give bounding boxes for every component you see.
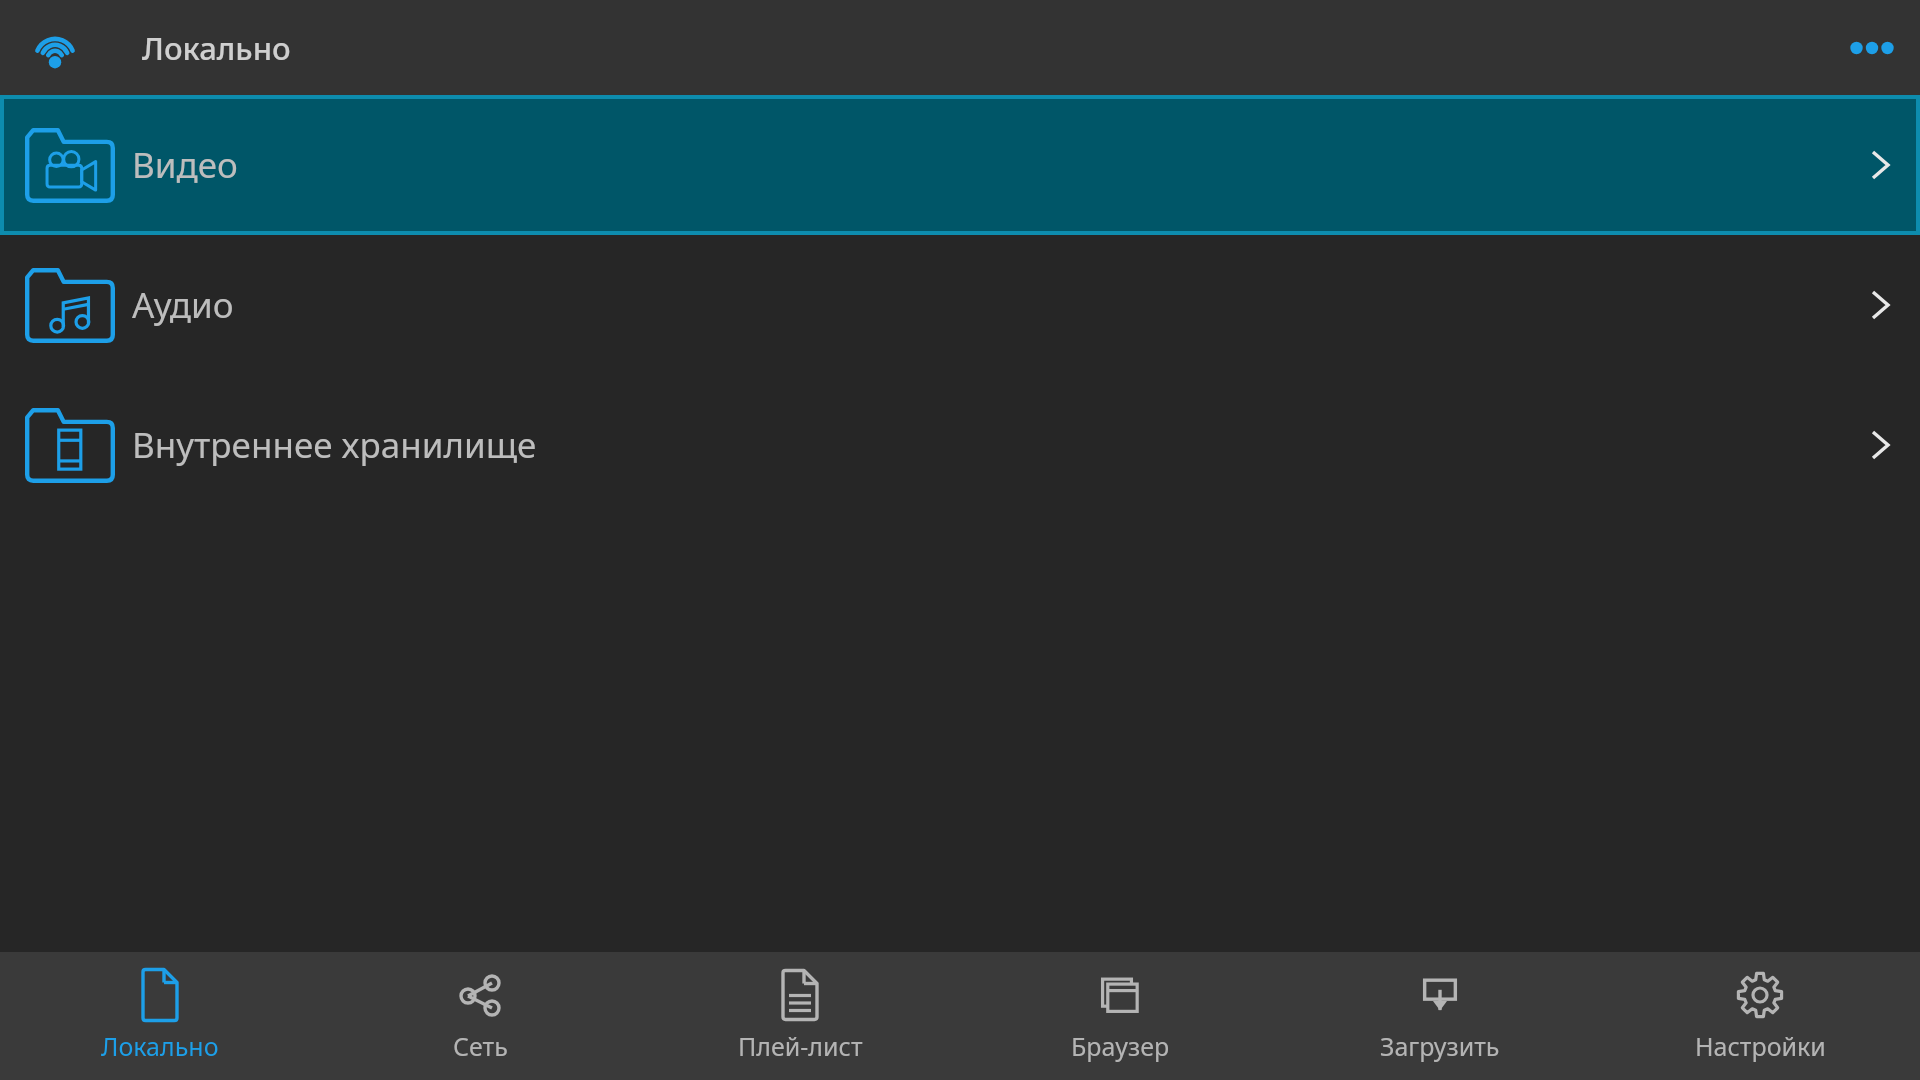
button[interactable]: Сеть — [320, 952, 640, 1080]
staticText: Видео — [132, 141, 238, 189]
button[interactable]: Браузер — [960, 952, 1280, 1080]
staticText: Браузер — [1071, 1029, 1170, 1063]
staticText: Локально — [101, 1029, 219, 1063]
staticText: Загрузить — [1380, 1029, 1500, 1063]
staticText: Настройки — [1695, 1029, 1826, 1063]
button[interactable]: Внутреннее хранилище — [0, 375, 1920, 515]
staticText: Аудио — [132, 281, 234, 329]
button[interactable]: Локально — [0, 952, 320, 1080]
staticText: Локально — [142, 27, 291, 69]
button[interactable]: Плей-лист — [640, 952, 960, 1080]
button[interactable]: Настройки — [1600, 952, 1920, 1080]
staticText: Сеть — [453, 1029, 508, 1063]
staticText: Плей-лист — [738, 1029, 863, 1063]
button[interactable]: Аудио — [0, 235, 1920, 375]
staticText: Внутреннее хранилище — [132, 421, 537, 469]
button[interactable]: Загрузить — [1280, 952, 1600, 1080]
button[interactable]: Видео — [0, 95, 1920, 235]
button[interactable]: Wi-Fi — [0, 0, 110, 95]
button[interactable]: More options — [1824, 0, 1920, 95]
